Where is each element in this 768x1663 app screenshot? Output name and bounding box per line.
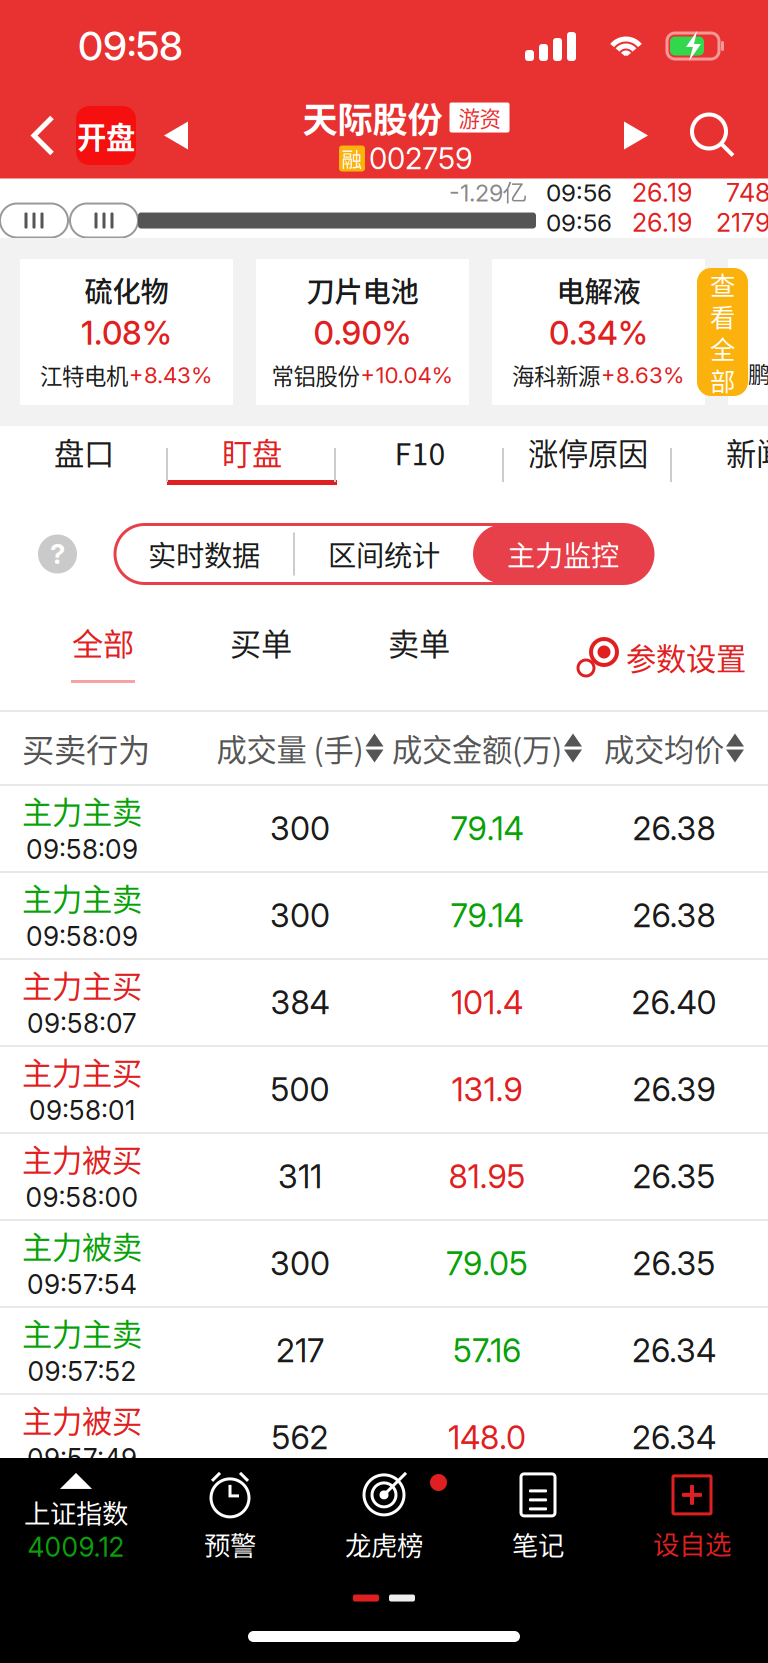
staticText: 查 <box>710 266 735 302</box>
button[interactable]: 上证指数 <box>0 1458 153 1578</box>
staticText: 300 <box>270 896 330 935</box>
staticText: 全 <box>710 330 735 366</box>
staticText: 0.90% <box>313 313 411 352</box>
staticText: 131.9 <box>451 1070 522 1109</box>
staticText: 主力被买 <box>22 1398 142 1441</box>
staticText: 300 <box>270 1244 330 1283</box>
button[interactable]: 参数设置 <box>576 625 768 689</box>
staticText: 79.14 <box>450 896 523 935</box>
staticText: 2179 <box>716 207 768 238</box>
button[interactable]: 涨停原因 <box>504 424 672 506</box>
button[interactable]: 主力监控 <box>473 524 653 583</box>
staticText: 101.4 <box>451 983 523 1022</box>
button[interactable]: 龙虎榜 <box>307 1458 461 1578</box>
staticText: 龙虎榜 <box>345 1525 423 1563</box>
staticText: 26.19 <box>632 177 692 208</box>
staticText: 盯盘 <box>222 430 282 474</box>
button[interactable]: 实时数据 <box>115 524 293 583</box>
staticText: 区间统计 <box>328 533 440 574</box>
staticText: 26.40 <box>631 983 716 1022</box>
button[interactable]: 新闻 <box>672 424 768 506</box>
button[interactable]: F10 <box>336 424 504 506</box>
staticText: -1.29亿 <box>449 178 526 207</box>
staticText: 79.14 <box>450 809 523 848</box>
button[interactable]: 成交均价 <box>604 725 744 771</box>
staticText: 4009.12 <box>27 1531 124 1563</box>
staticText: 26.19 <box>632 207 692 238</box>
staticText: 148.0 <box>448 1418 526 1457</box>
staticText: 融 <box>341 144 362 173</box>
staticText: 江特电机 <box>40 359 128 391</box>
staticText: 主力被买 <box>22 1137 142 1180</box>
staticText: 天际股份 <box>302 92 442 143</box>
button[interactable]: 硫化物 <box>20 259 233 405</box>
staticText: 09:58:00 <box>25 1181 138 1213</box>
button[interactable]: 卖单 <box>340 604 498 710</box>
staticText: ? <box>50 537 65 571</box>
staticText: +8.43% <box>129 361 213 388</box>
staticText: 游资 <box>458 102 500 133</box>
staticText: 26.38 <box>632 896 715 935</box>
staticText: 主力主卖 <box>22 789 142 832</box>
staticText: 主力主买 <box>22 963 142 1006</box>
staticText: 26.35 <box>632 1157 715 1196</box>
staticText: 鹏海 <box>748 357 768 389</box>
button[interactable]: 成交金额(万) <box>392 725 582 771</box>
staticText: 电解液 <box>556 269 640 310</box>
staticText: 买单 <box>230 619 292 665</box>
staticText: +10.04% <box>360 361 453 388</box>
button[interactable]: 刀片电池 <box>256 259 469 405</box>
staticText: 217 <box>276 1331 324 1370</box>
button[interactable]: 盯盘 <box>168 424 336 506</box>
button[interactable]: 预警 <box>153 1458 307 1578</box>
staticText: 26.38 <box>632 809 715 848</box>
staticText: 硫化物 <box>84 269 168 310</box>
staticText: 57.16 <box>453 1331 521 1370</box>
staticText: 主力主卖 <box>22 1311 142 1354</box>
staticText: 26.34 <box>632 1418 716 1457</box>
staticText: 主力被卖 <box>22 1224 142 1267</box>
button[interactable]: 区间统计 <box>295 524 473 583</box>
button[interactable]: 返回 <box>18 105 70 165</box>
staticText: 748 <box>726 177 768 208</box>
staticText: 设自选 <box>653 1524 731 1562</box>
button[interactable]: 盘口 <box>0 424 168 506</box>
button[interactable]: 笔记 <box>461 1458 615 1578</box>
staticText: 上证指数 <box>24 1493 128 1531</box>
button[interactable]: 查 <box>697 268 748 396</box>
button[interactable]: 上一只 <box>136 105 216 165</box>
button[interactable]: 电解液 <box>492 259 705 405</box>
staticText: 26.39 <box>632 1070 715 1109</box>
staticText: 26.34 <box>632 1331 716 1370</box>
staticText: 26.35 <box>632 1244 715 1283</box>
staticText: 刀片电池 <box>306 269 418 310</box>
staticText: 09:57:52 <box>27 1355 136 1387</box>
staticText: 09:58:07 <box>27 1007 137 1039</box>
staticText: 部 <box>710 362 735 398</box>
button[interactable]: 帮助 <box>38 534 77 573</box>
staticText: 主力主卖 <box>22 876 142 919</box>
button[interactable]: 买单 <box>182 604 340 710</box>
staticText: 09:58:09 <box>26 833 138 865</box>
staticText: 成交量 (手) <box>216 726 363 770</box>
staticText: 09:56 <box>546 178 612 207</box>
button[interactable]: 设自选 <box>615 1458 768 1578</box>
button[interactable]: 成交量 (手) <box>216 725 383 771</box>
staticText: 常铝股份 <box>271 359 359 391</box>
button[interactable]: 搜索 <box>676 103 750 167</box>
staticText: 311 <box>278 1157 322 1196</box>
staticText: 81.95 <box>448 1157 525 1196</box>
staticText: 海科新源 <box>512 359 600 391</box>
staticText: 卖单 <box>388 619 450 665</box>
staticText: 涨停原因 <box>528 430 648 474</box>
button[interactable]: 下一只 <box>596 105 676 165</box>
staticText: 实时数据 <box>148 533 260 574</box>
staticText: 全部 <box>72 619 134 665</box>
staticText: 盘口 <box>54 430 114 474</box>
staticText: 09:58 <box>78 22 183 70</box>
button[interactable]: 全部 <box>24 604 182 710</box>
staticText: 09:56 <box>546 208 612 237</box>
staticText: 成交均价 <box>604 726 724 770</box>
staticText: 1.08% <box>81 313 172 352</box>
button[interactable]: 开盘 <box>76 106 136 165</box>
